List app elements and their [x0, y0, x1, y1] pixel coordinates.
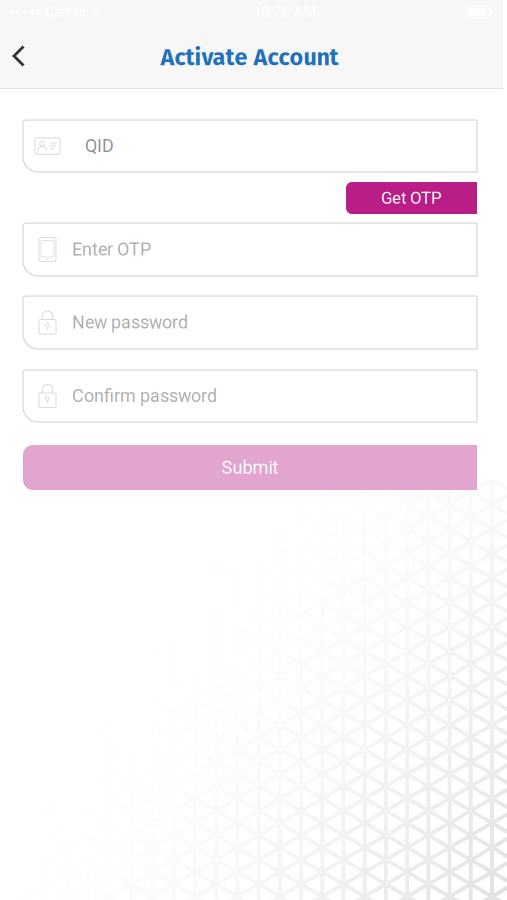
staticText: Get OTP [381, 188, 442, 208]
staticText: Activate Account [160, 43, 338, 71]
button[interactable]: New password [23, 296, 477, 349]
button[interactable]: QID [23, 120, 477, 172]
staticText: QID [85, 135, 114, 156]
staticText: Enter OTP [72, 239, 151, 260]
button[interactable]: Enter OTP [23, 223, 477, 276]
staticText: New password [72, 312, 188, 333]
button[interactable]: Get OTP [346, 182, 477, 214]
staticText: Confirm password [72, 385, 217, 406]
button[interactable]: Back [0, 31, 39, 80]
button[interactable]: Confirm password [23, 370, 477, 422]
button[interactable]: Submit [23, 445, 477, 490]
staticText: Submit [221, 457, 278, 478]
